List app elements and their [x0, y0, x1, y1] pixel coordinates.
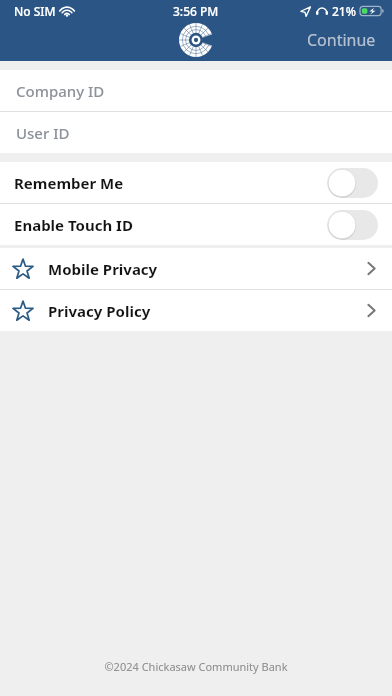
button[interactable]: Enable Touch ID — [0, 204, 392, 245]
staticText: Company ID — [16, 81, 105, 101]
staticText: Privacy Policy — [48, 301, 367, 321]
button[interactable]: Remember Me — [0, 162, 392, 203]
button[interactable]: Company ID — [0, 70, 392, 111]
staticText: 21% — [332, 3, 356, 19]
staticText: Mobile Privacy — [48, 259, 367, 279]
staticText: Enable Touch ID — [14, 215, 133, 235]
other: Chickasaw Community Bank logo — [179, 23, 213, 57]
staticText: Continue — [307, 29, 376, 51]
staticText: User ID — [16, 123, 70, 143]
staticText: Remember Me — [14, 173, 124, 193]
button[interactable]: Continue — [291, 21, 392, 59]
other: Toggle off — [327, 210, 378, 240]
staticText: No SIM — [14, 3, 56, 19]
button[interactable]: User ID — [0, 112, 392, 153]
button[interactable]: Privacy Policy — [0, 290, 392, 331]
staticText: ©2024 Chickasaw Community Bank — [0, 659, 392, 674]
staticText: 3:56 PM — [173, 3, 219, 19]
button[interactable]: Mobile Privacy — [0, 248, 392, 289]
other: Toggle off — [327, 168, 378, 198]
